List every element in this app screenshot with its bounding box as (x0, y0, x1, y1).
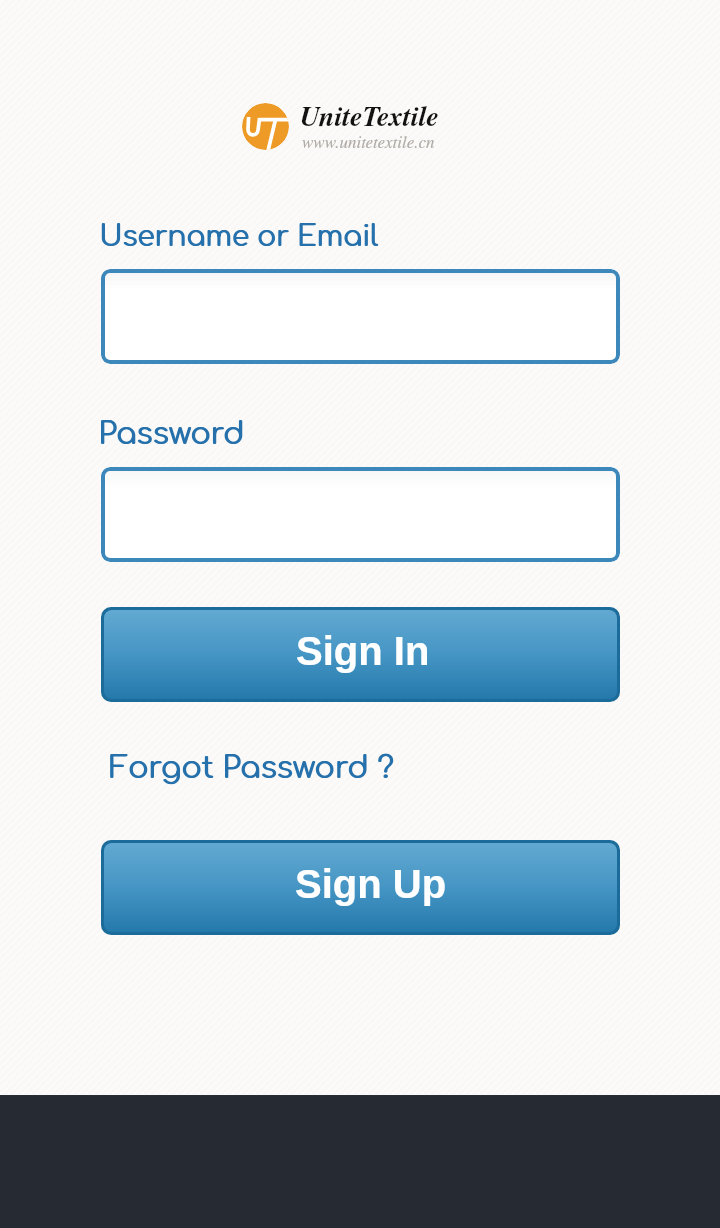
staticText: Forgot Password ? (110, 752, 395, 785)
button[interactable]: Forgot Password ? (109, 752, 394, 785)
staticText: www.unitetextile.cn (302, 130, 435, 153)
staticText: Sign Up (295, 862, 447, 907)
staticText: Forgot Password ? (109, 752, 394, 785)
staticText: Password (98, 418, 245, 451)
button[interactable]: Sign In (104, 610, 617, 699)
button[interactable] (101, 269, 620, 364)
button[interactable] (101, 467, 620, 562)
staticText: Sign In (296, 629, 430, 674)
staticText: UniteTextile (300, 96, 439, 135)
staticText: Username or Email (99, 221, 378, 252)
button[interactable]: Sign Up (104, 843, 617, 932)
other: UniteTextile logo (242, 103, 289, 150)
staticText: Password (99, 418, 246, 451)
staticText: Username or Email (100, 221, 379, 252)
